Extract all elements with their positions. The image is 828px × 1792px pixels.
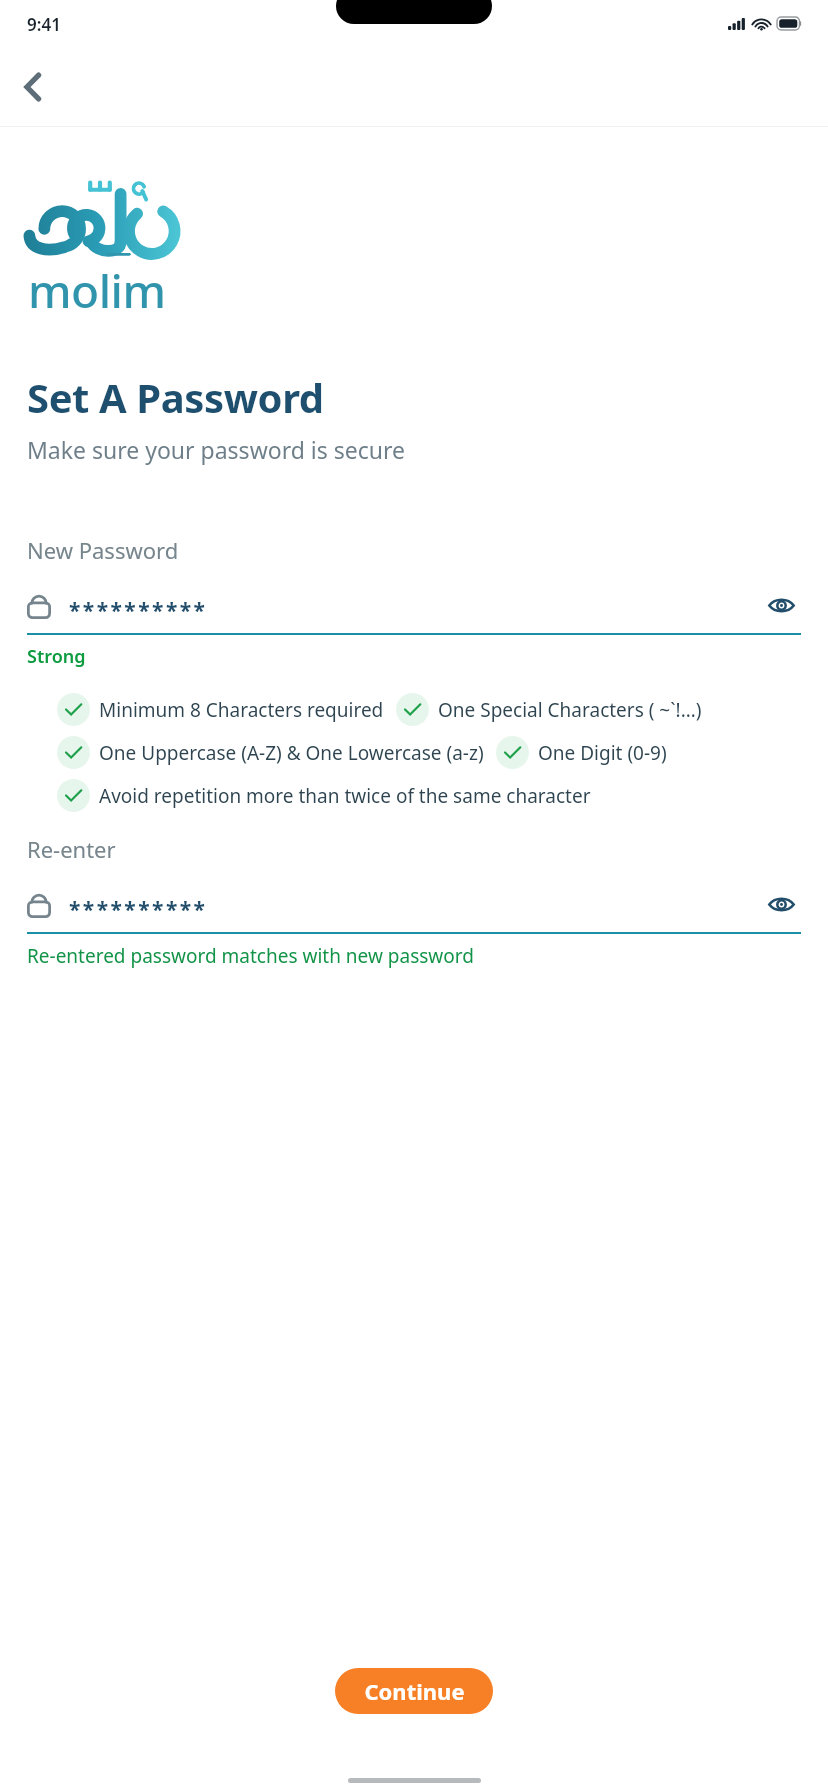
button[interactable]: Show re-entered password [761, 884, 801, 924]
button[interactable]: Show new password [761, 585, 801, 625]
staticText: Strong [27, 644, 86, 669]
staticText: Minimum 8 Characters required [99, 697, 384, 723]
button[interactable]: Continue [335, 1668, 493, 1714]
staticText: Re-enter [27, 834, 116, 864]
staticText: 9:41 [27, 13, 61, 36]
staticText: Re-entered password matches with new pas… [27, 943, 474, 969]
staticText: One Digit (0-9) [538, 740, 667, 766]
staticText: Avoid repetition more than twice of the … [99, 783, 591, 809]
staticText: One Uppercase (A-Z) & One Lowercase (a-z… [99, 740, 484, 766]
staticText: * * * * * * * * * * [69, 596, 204, 625]
staticText: molim [28, 259, 166, 322]
button[interactable]: Back [10, 64, 56, 110]
staticText: New Password [27, 535, 179, 565]
staticText: One Special Characters ( ~`!…) [438, 697, 702, 723]
staticText: Make sure your password is secure [27, 434, 405, 465]
staticText: Continue [364, 1676, 465, 1706]
staticText: * * * * * * * * * * [69, 895, 204, 924]
staticText: Set A Password [27, 370, 324, 424]
